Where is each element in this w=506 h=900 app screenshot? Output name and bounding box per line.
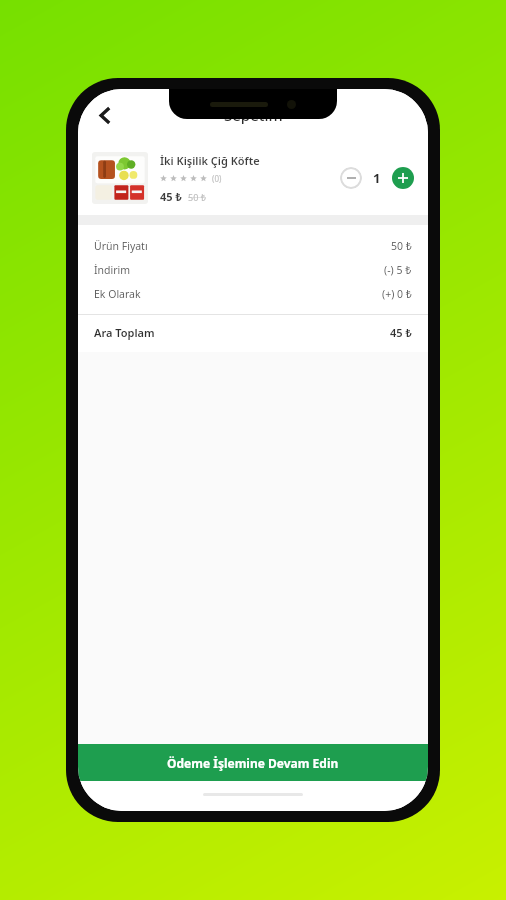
staticText: Ürün Fiyatı	[94, 239, 148, 253]
staticText: 1	[373, 169, 381, 187]
button[interactable]: Back	[86, 96, 124, 134]
staticText: 50 ₺	[391, 239, 412, 253]
staticText: İndirim	[94, 263, 131, 277]
staticText: (0)	[212, 173, 222, 184]
staticText: 45 ₺	[160, 189, 182, 204]
button[interactable]: İki Kişilik Çiğ Köfte	[92, 152, 414, 204]
button[interactable]: Decrease quantity	[340, 167, 362, 189]
staticText: İki Kişilik Çiğ Köfte	[160, 153, 260, 168]
staticText: 45 ₺	[390, 325, 412, 340]
button[interactable]: Increase quantity	[392, 167, 414, 189]
staticText: (+) 0 ₺	[382, 287, 412, 301]
staticText: 50 ₺	[188, 191, 206, 203]
staticText: (-) 5 ₺	[384, 263, 412, 277]
staticText: Ara Toplam	[94, 325, 155, 340]
staticText: Ek Olarak	[94, 287, 141, 301]
staticText: Ödeme İşlemine Devam Edin	[167, 755, 339, 771]
button[interactable]: Ödeme İşlemine Devam Edin	[78, 744, 428, 781]
staticText: Sepetim	[224, 105, 283, 125]
